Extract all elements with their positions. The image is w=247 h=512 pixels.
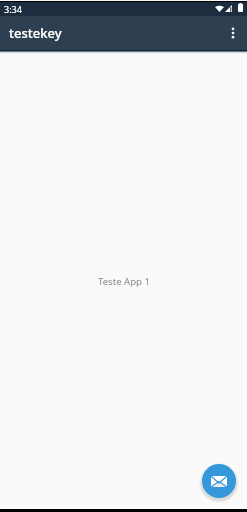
button[interactable]: More options bbox=[221, 21, 245, 45]
staticText: testekey bbox=[9, 24, 62, 42]
staticText: 3:34 bbox=[4, 3, 22, 15]
button[interactable]: Compose email bbox=[202, 464, 236, 498]
staticText: Teste App 1 bbox=[98, 275, 150, 288]
